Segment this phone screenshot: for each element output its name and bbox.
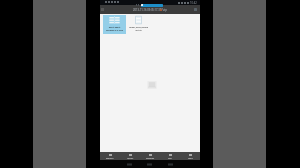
button[interactable]: Back [124, 161, 135, 167]
button[interactable]: Recent apps [165, 161, 176, 167]
staticText: Explorer [106, 157, 114, 159]
button[interactable]: Home [144, 161, 155, 167]
button[interactable]: Lorem_Word_Docum [127, 15, 150, 34]
staticText: ent.rtf [127, 29, 150, 32]
staticText: Tools [188, 157, 193, 159]
staticText: App [168, 157, 172, 159]
staticText: Library [127, 157, 134, 159]
button[interactable]: Library [120, 152, 140, 160]
staticText: Windows X.X.x.zip [103, 29, 126, 32]
button[interactable]: Tools [180, 152, 200, 160]
staticText: Lorem_Word_Docum [127, 26, 150, 29]
button[interactable]: Guest agent [103, 15, 126, 34]
button[interactable]: App [160, 152, 180, 160]
button[interactable]: Transfer progress [141, 4, 163, 7]
button[interactable]: Windows [140, 152, 160, 160]
button[interactable]: Explorer [100, 152, 120, 160]
staticText: 2013-11-16 09:35:17.377.zip [133, 8, 167, 12]
staticText: Guest agent [103, 26, 126, 29]
staticText: Windows [146, 157, 155, 159]
staticText: 10:42 [190, 1, 197, 5]
